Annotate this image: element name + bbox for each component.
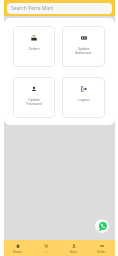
button[interactable]: Search Petra Mart — [7, 3, 112, 14]
staticText: Search Petra Mart — [11, 5, 54, 12]
staticText: Orders — [28, 46, 40, 51]
staticText: Logout — [78, 97, 90, 102]
staticText: Update Addresses — [75, 46, 92, 55]
button[interactable]: Logout — [62, 77, 105, 118]
button[interactable]: Other — [87, 240, 115, 256]
button[interactable]: Orders — [13, 26, 55, 67]
staticText: Home — [13, 250, 23, 254]
button[interactable]: Update Password — [13, 77, 55, 118]
button[interactable]: Home — [4, 240, 31, 256]
staticText: Update Password — [26, 97, 42, 106]
button[interactable]: Chat on WhatsApp — [95, 219, 109, 233]
staticText: Cart — [42, 250, 49, 254]
staticText: User — [70, 250, 77, 254]
button[interactable]: Update Addresses — [62, 26, 105, 67]
button[interactable]: User — [59, 240, 87, 256]
button[interactable]: Cart — [31, 240, 59, 256]
staticText: Other — [97, 250, 106, 254]
